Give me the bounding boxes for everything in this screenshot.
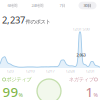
button[interactable]: 24時間 bbox=[25, 1, 50, 10]
staticText: 2,063 bbox=[76, 52, 85, 58]
staticText: 12/17 bbox=[45, 68, 54, 74]
staticText: % bbox=[93, 91, 97, 99]
staticText: ポジティブ bbox=[6, 76, 31, 83]
button[interactable]: 30日 bbox=[75, 1, 100, 10]
staticText: 1 bbox=[85, 83, 93, 100]
staticText: 30日 bbox=[83, 3, 91, 8]
button[interactable]: 6時間 bbox=[0, 1, 25, 10]
staticText: 12/3 bbox=[6, 68, 13, 74]
staticText: 12/10 bbox=[25, 68, 34, 74]
staticText: 99 bbox=[2, 83, 18, 100]
staticText: 7日 bbox=[59, 3, 65, 8]
staticText: % bbox=[18, 91, 22, 99]
staticText: 24時間 bbox=[31, 3, 43, 8]
staticText: 6時間 bbox=[7, 3, 17, 8]
staticText: 件のポスト bbox=[25, 19, 50, 25]
staticText: 12/24 bbox=[65, 68, 74, 74]
staticText: 12/31 bbox=[85, 68, 94, 74]
button[interactable]: 7日 bbox=[50, 1, 75, 10]
staticText: ネガティブ bbox=[69, 76, 94, 83]
staticText: 12/31 5:00 bbox=[72, 26, 89, 32]
staticText: 2,237 bbox=[2, 14, 25, 26]
